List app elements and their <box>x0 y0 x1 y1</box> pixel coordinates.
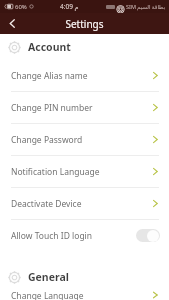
staticText: 4:09 م <box>60 2 79 11</box>
button[interactable]: Change PIN number <box>0 92 169 123</box>
staticText: SIM <box>126 3 136 10</box>
staticText: General <box>28 270 69 284</box>
staticText: Change Language <box>11 290 152 300</box>
button[interactable]: Notification Language <box>0 156 169 187</box>
staticText: Change PIN number <box>11 102 152 114</box>
button[interactable]: Change Language <box>0 290 169 300</box>
button[interactable]: Change Password <box>0 124 169 155</box>
staticText: Allow Touch ID login <box>11 230 136 242</box>
staticText: Change Password <box>11 134 152 146</box>
staticText: Settings <box>65 17 104 31</box>
button[interactable]: Back <box>0 13 24 34</box>
staticText: Notification Language <box>11 166 152 178</box>
button[interactable]: Deactivate Device <box>0 188 169 219</box>
staticText: Deactivate Device <box>11 198 152 210</box>
staticText: Account <box>28 40 71 54</box>
staticText: Change Alias name <box>11 70 152 82</box>
button[interactable]: Allow Touch ID login <box>0 220 169 251</box>
other: Allow Touch ID login toggle <box>136 229 160 242</box>
staticText: بطاقة السيم <box>137 3 166 10</box>
button[interactable]: Change Alias name <box>0 60 169 91</box>
staticText: 60% <box>15 3 27 11</box>
